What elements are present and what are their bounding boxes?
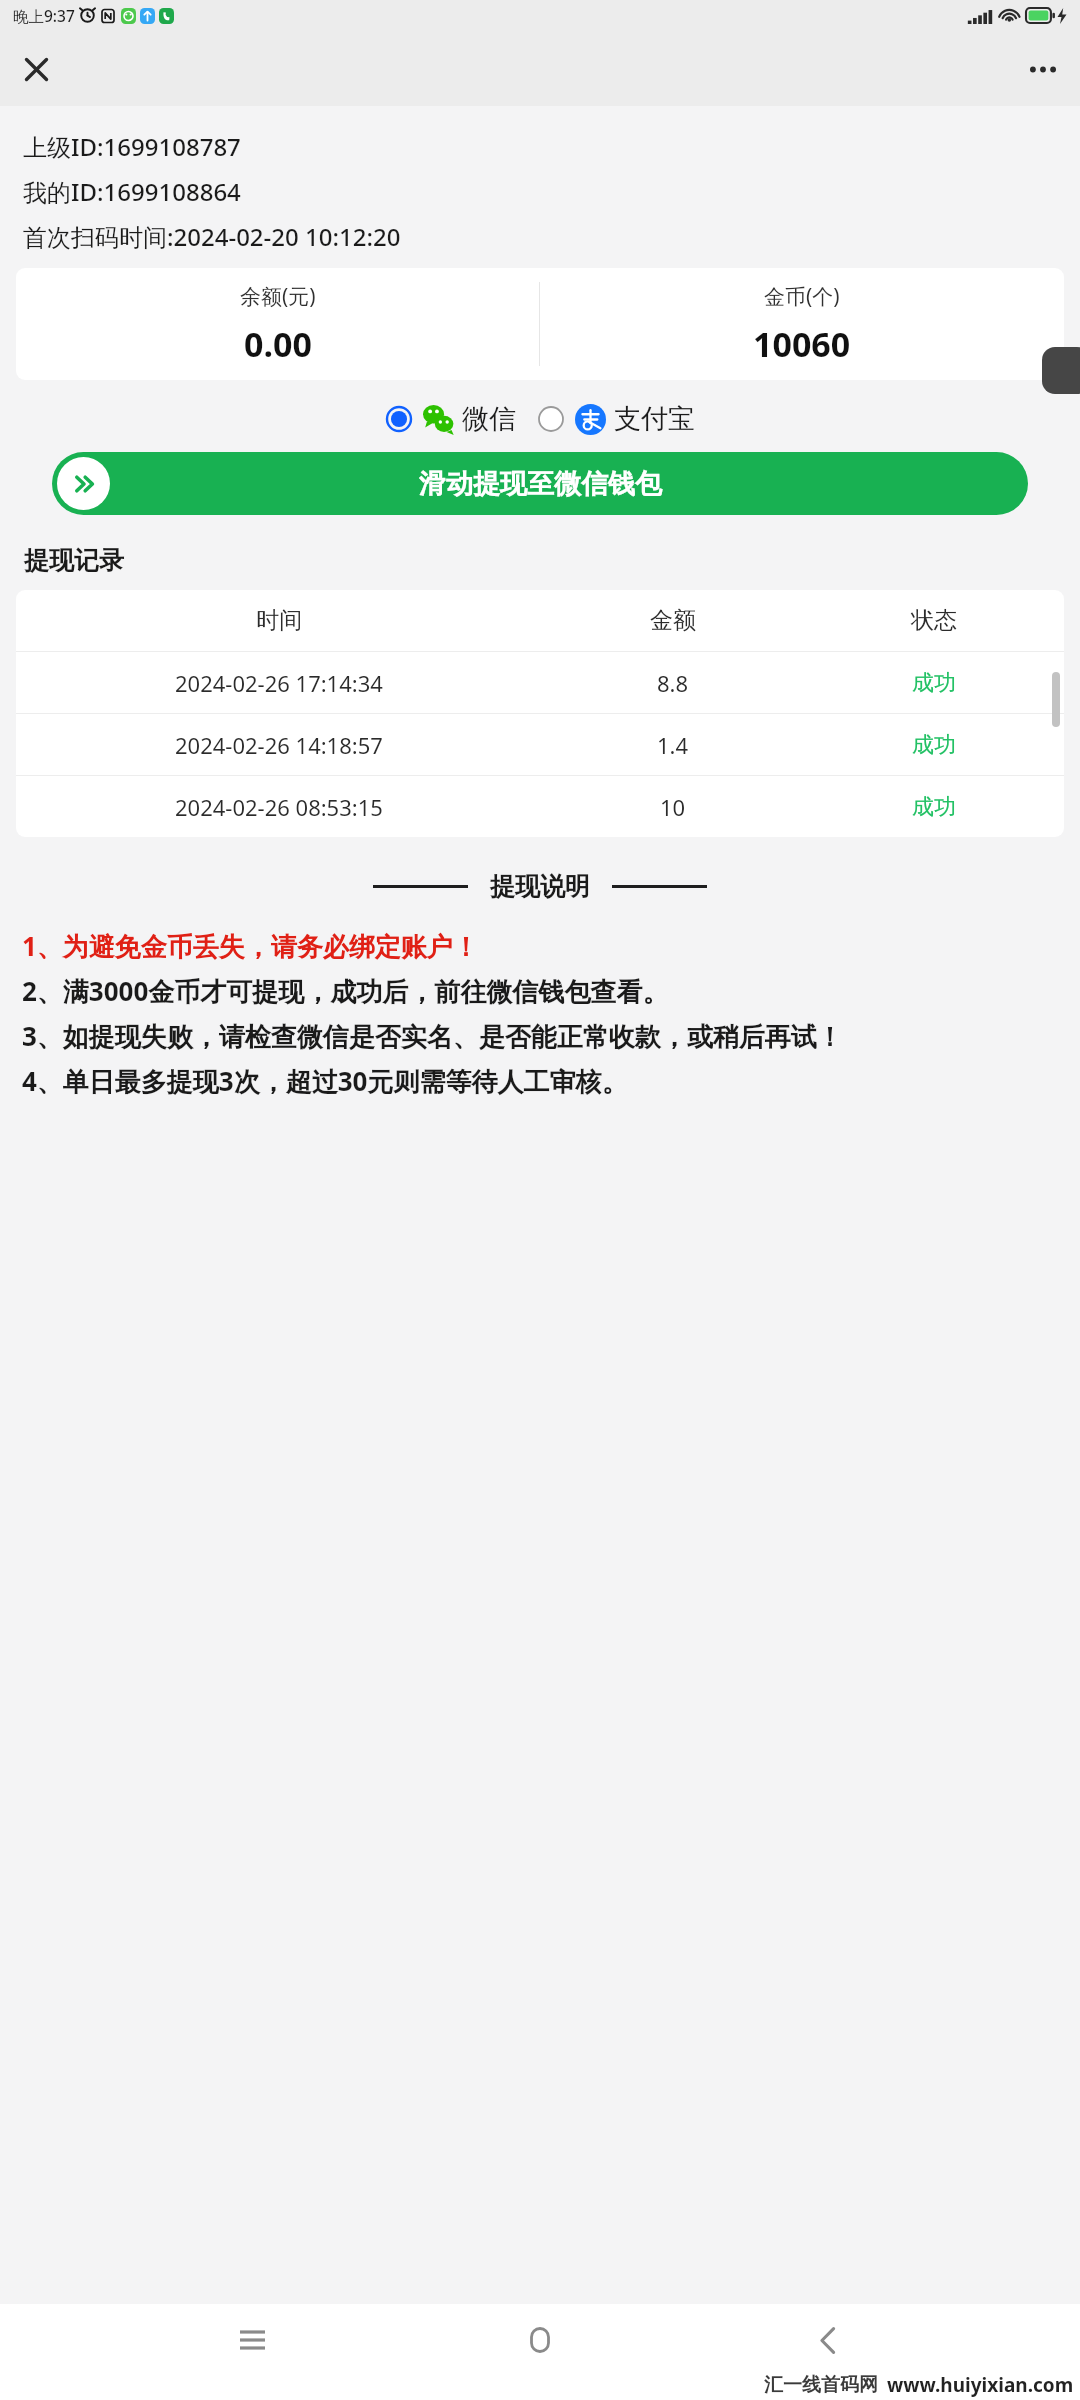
staticText: 3、如提现失败，请检查微信是否实名、是否能正常收款，或稍后再试！ — [22, 1018, 1058, 1054]
staticText: 成功 — [912, 731, 956, 759]
staticText: www.huiyixian.com — [887, 2372, 1074, 2398]
button[interactable]: Recent apps — [216, 2304, 288, 2376]
staticText: 金额 — [650, 606, 696, 635]
staticText: 1、为避免金币丢失，请务必绑定账户！ — [22, 928, 479, 964]
button[interactable]: Floating assistant — [1042, 347, 1080, 394]
button[interactable]: 微信 — [386, 402, 516, 436]
button[interactable]: 滑动提现至微信钱包 — [52, 452, 1028, 515]
staticText: 提现记录 — [24, 545, 124, 576]
staticText: 0.00 — [244, 321, 312, 367]
staticText: 10060 — [753, 321, 851, 367]
staticText: 2024-02-26 14:18:57 — [175, 730, 383, 760]
button[interactable]: More options — [1020, 46, 1066, 92]
staticText: 1.4 — [657, 730, 689, 760]
staticText: 成功 — [912, 793, 956, 821]
staticText: 2024-02-26 17:14:34 — [175, 668, 383, 698]
staticText: 成功 — [912, 669, 956, 697]
staticText: 首次扫码时间:2024-02-20 10:12:20 — [23, 220, 401, 253]
staticText: 晚上9:37 — [13, 5, 75, 26]
staticText: 2、满3000金币才可提现，成功后，前往微信钱包查看。 — [22, 973, 1058, 1009]
staticText: 4、单日最多提现3次，超过30元则需等待人工审核。 — [22, 1063, 1058, 1099]
staticText: 提现说明 — [490, 871, 590, 902]
staticText: 余额(元) — [240, 282, 316, 311]
staticText: 上级ID:1699108787 — [23, 130, 241, 163]
staticText: 我的ID:1699108864 — [23, 175, 241, 208]
staticText: 支付宝 — [614, 402, 695, 436]
staticText: 汇一线首码网 — [764, 2373, 878, 2397]
button[interactable]: Home — [504, 2304, 576, 2376]
staticText: 10 — [660, 792, 686, 822]
staticText: 8.8 — [657, 668, 689, 698]
staticText: 状态 — [911, 606, 957, 635]
button[interactable]: 支付宝 — [538, 402, 695, 436]
staticText: 金币(个) — [764, 282, 840, 311]
button[interactable]: Close — [13, 46, 59, 92]
staticText: 2024-02-26 08:53:15 — [175, 792, 383, 822]
button[interactable]: Back — [792, 2304, 864, 2376]
staticText: 时间 — [256, 606, 302, 635]
staticText: 微信 — [462, 402, 516, 436]
staticText: 滑动提现至微信钱包 — [419, 467, 662, 501]
